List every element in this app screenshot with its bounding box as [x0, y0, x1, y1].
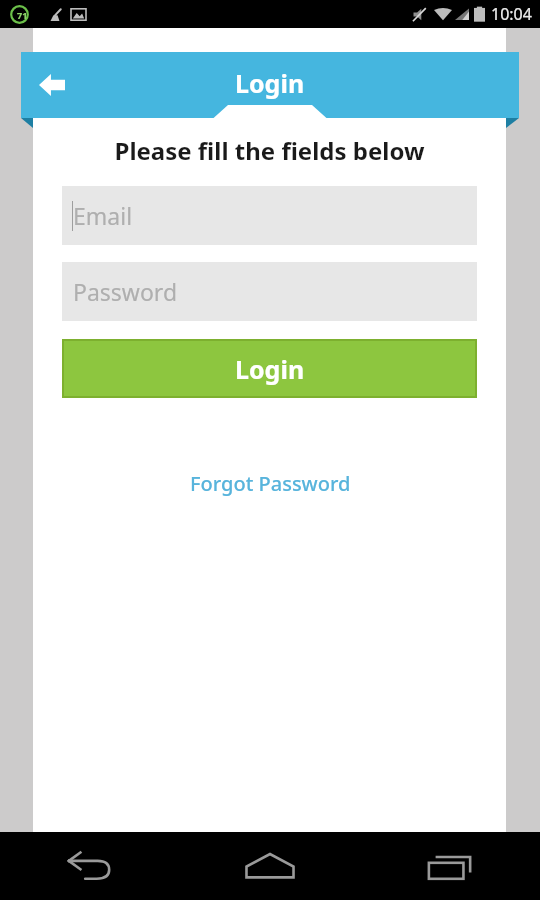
staticText: Forgot Password: [190, 470, 351, 497]
button[interactable]: Back: [30, 63, 74, 107]
staticText: Email: [73, 200, 133, 231]
button[interactable]: Home: [180, 832, 360, 900]
button[interactable]: Recents: [360, 832, 540, 900]
button[interactable]: Forgot Password: [178, 464, 363, 503]
staticText: Login: [235, 352, 305, 386]
button[interactable]: Back: [0, 832, 180, 900]
button[interactable]: Login: [64, 341, 475, 396]
staticText: Please fill the fields below: [33, 134, 506, 167]
staticText: 10:04: [491, 3, 532, 25]
staticText: 71: [17, 9, 28, 21]
staticText: Password: [73, 276, 178, 307]
button[interactable]: Email: [62, 186, 477, 245]
staticText: Login: [235, 66, 305, 100]
button[interactable]: Password: [62, 262, 477, 321]
